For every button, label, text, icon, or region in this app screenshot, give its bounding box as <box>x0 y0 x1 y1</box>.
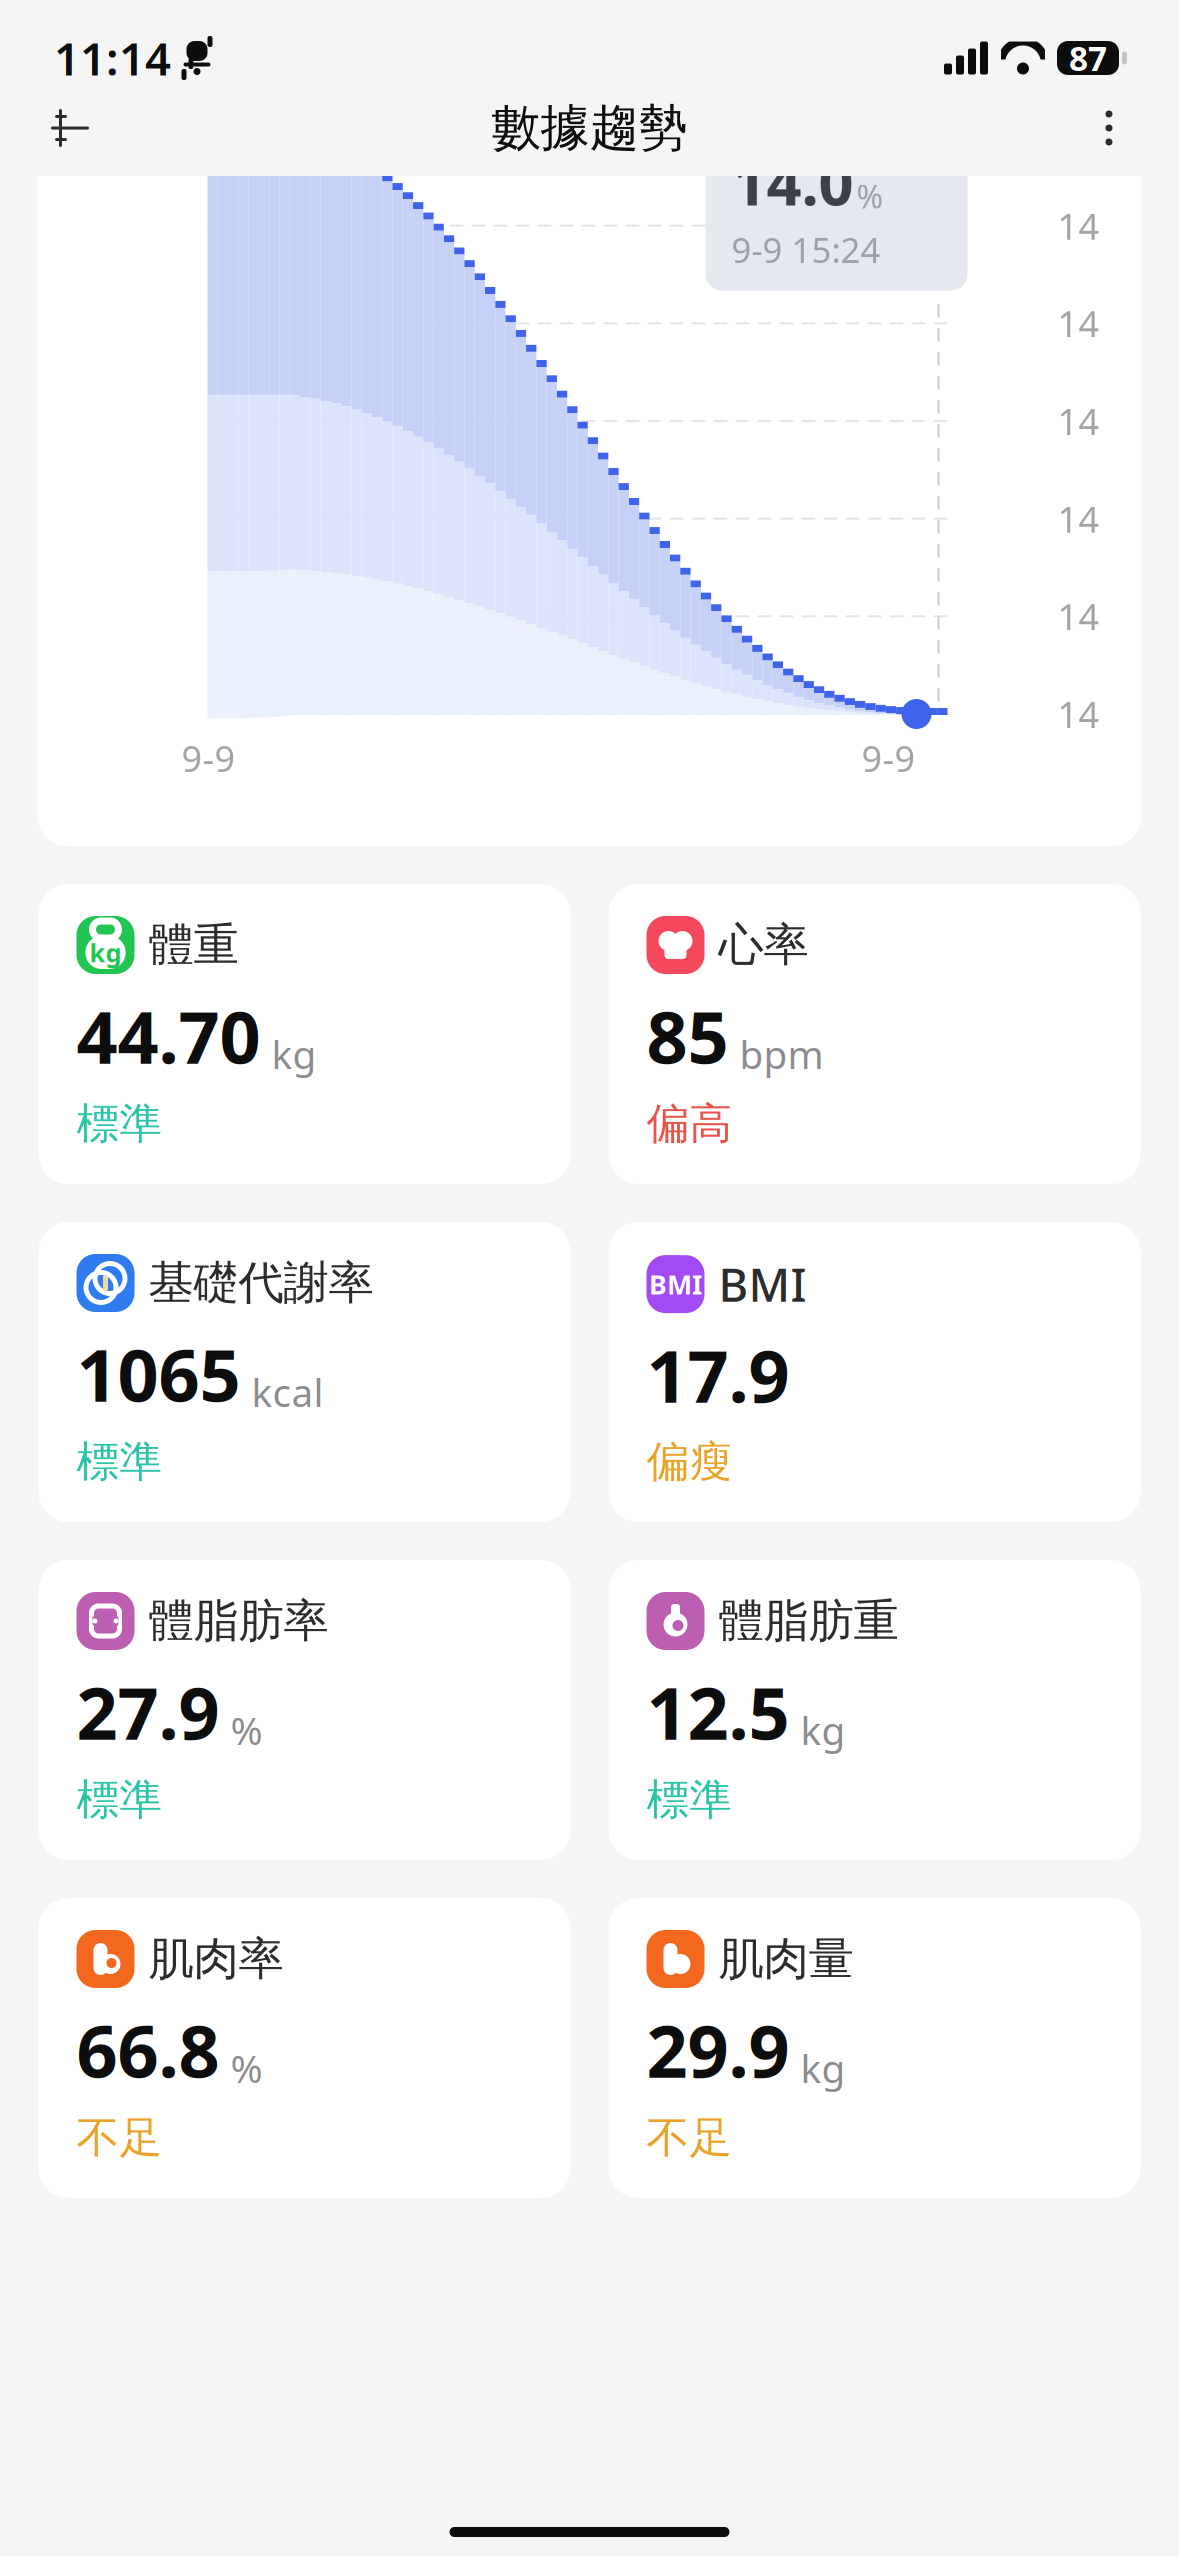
button[interactable]: Back <box>30 88 110 168</box>
staticText: kg <box>271 1028 316 1080</box>
staticText: 85 <box>646 988 728 1084</box>
staticText: 17.9 <box>646 1327 789 1423</box>
staticText: 心率 <box>718 917 808 973</box>
staticText: 標準 <box>646 1774 732 1826</box>
staticText: 標準 <box>76 1098 162 1150</box>
staticText: 標準 <box>76 1436 162 1488</box>
staticText: 9-9 <box>861 734 915 782</box>
staticText: 44.70 <box>76 988 260 1084</box>
button[interactable]: 心率 <box>608 884 1140 1184</box>
staticText: 不足 <box>76 2112 162 2164</box>
button[interactable]: kg <box>38 884 570 1184</box>
staticText: 14 <box>1057 495 1099 543</box>
staticText: 肌肉率 <box>148 1931 283 1987</box>
staticText: 數據趨勢 <box>491 98 687 158</box>
staticText: kg <box>89 936 121 969</box>
button[interactable]: 體脂肪率 <box>38 1560 570 1860</box>
staticText: 1065 <box>76 1326 240 1422</box>
staticText: 14 <box>1057 299 1099 347</box>
staticText: 9-9 <box>181 734 235 782</box>
staticText: 27.9 <box>76 1664 219 1760</box>
staticText: 體重 <box>148 917 238 973</box>
staticText: 肌肉量 <box>718 1931 853 1987</box>
staticText: % <box>230 1704 262 1756</box>
staticText: bpm <box>739 1028 823 1080</box>
staticText: 基礎代謝率 <box>148 1255 373 1311</box>
staticText: 14 <box>1057 690 1099 738</box>
staticText: 14.0 <box>731 141 853 222</box>
staticText: 標準 <box>76 1774 162 1826</box>
staticText: kg <box>800 2042 845 2094</box>
staticText: 不足 <box>646 2112 732 2164</box>
staticText: BMI <box>718 1254 806 1314</box>
staticText: 偏瘦 <box>646 1436 732 1488</box>
button[interactable]: 肌肉量 <box>608 1898 1140 2198</box>
staticText: 29.9 <box>646 2002 789 2098</box>
staticText: % <box>856 175 883 217</box>
staticText: 體脂肪率 <box>148 1593 328 1649</box>
staticText: BMI <box>649 1266 702 1302</box>
button[interactable]: 基礎代謝率 <box>38 1222 570 1522</box>
button[interactable]: BMI <box>608 1222 1140 1522</box>
button[interactable]: 體脂肪重 <box>608 1560 1140 1860</box>
staticText: 9-9 15:24 <box>731 226 880 272</box>
staticText: kcal <box>251 1366 323 1418</box>
staticText: 14 <box>1057 202 1099 250</box>
staticText: 11:14 <box>54 28 171 88</box>
staticText: 66.8 <box>76 2002 219 2098</box>
button[interactable]: More options <box>1069 88 1149 168</box>
staticText: % <box>230 2042 262 2094</box>
staticText: 87 <box>1069 36 1107 80</box>
staticText: 14 <box>1057 592 1099 640</box>
staticText: 12.5 <box>646 1664 789 1760</box>
button[interactable]: 肌肉率 <box>38 1898 570 2198</box>
staticText: 體脂肪重 <box>718 1593 898 1649</box>
staticText: 偏高 <box>646 1098 732 1150</box>
staticText: kg <box>800 1704 845 1756</box>
staticText: 14 <box>1057 397 1099 445</box>
